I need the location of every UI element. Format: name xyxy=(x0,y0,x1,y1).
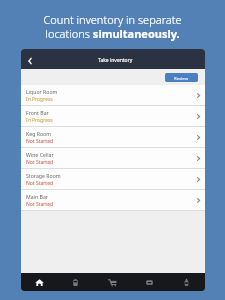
staticText: Wine Cellar xyxy=(26,151,54,158)
button[interactable]: Orders xyxy=(94,273,131,291)
button[interactable]: Products xyxy=(168,273,205,291)
staticText: Count inventory in separate locations si… xyxy=(0,12,225,41)
staticText: Take inventory xyxy=(98,57,133,64)
staticText: Not Started xyxy=(26,138,54,145)
button[interactable]: Storage Room xyxy=(21,169,205,189)
staticText: Front Bar xyxy=(26,109,49,116)
button[interactable]: Keg Room xyxy=(21,127,205,147)
button[interactable]: Inventory xyxy=(57,273,94,291)
staticText: Main Bar xyxy=(26,193,48,200)
button[interactable]: Review xyxy=(165,73,198,82)
button[interactable]: Back xyxy=(22,53,38,69)
staticText: In Progress xyxy=(26,96,53,103)
staticText: Storage Room xyxy=(26,172,61,179)
button[interactable]: Liquor Room xyxy=(21,85,205,105)
staticText: Not Started xyxy=(26,180,54,187)
staticText: In Progress xyxy=(26,117,53,124)
button[interactable]: Front Bar xyxy=(21,106,205,126)
staticText: Keg Room xyxy=(26,130,52,137)
button[interactable]: Reports xyxy=(131,273,168,291)
button[interactable]: Home xyxy=(21,273,57,291)
staticText: Liquor Room xyxy=(26,88,58,95)
staticText: Not Started xyxy=(26,201,54,208)
staticText: Not Started xyxy=(26,159,54,166)
button[interactable]: Main Bar xyxy=(21,190,205,210)
button[interactable]: Wine Cellar xyxy=(21,148,205,168)
staticText: Review xyxy=(174,75,189,81)
